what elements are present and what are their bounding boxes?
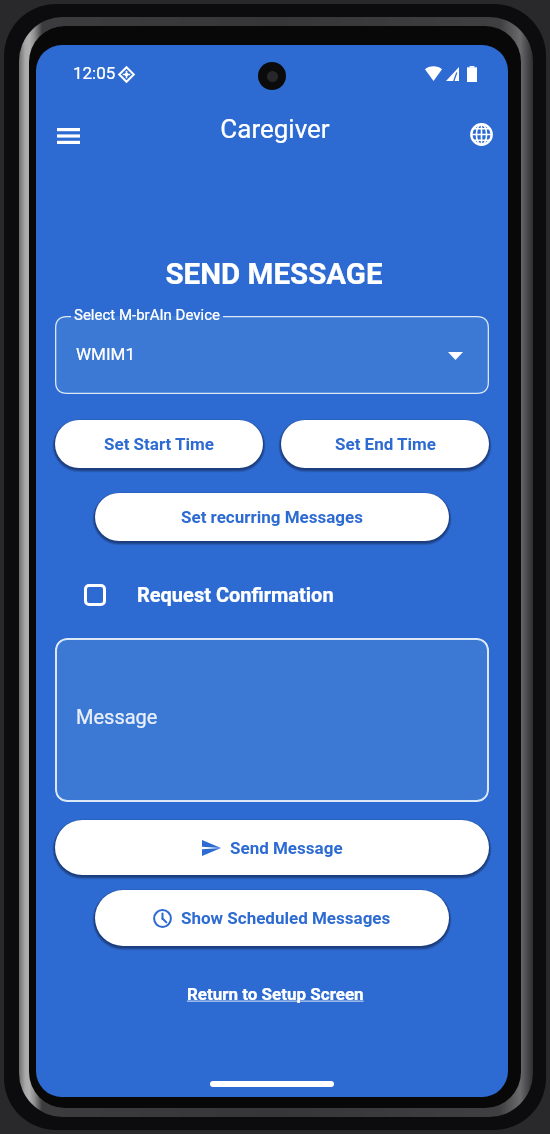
staticText: Set Start Time <box>104 434 214 454</box>
staticText: 12:05 <box>73 63 116 83</box>
staticText: Set recurring Messages <box>181 507 363 527</box>
button[interactable]: Return to Setup Screen <box>187 984 364 1004</box>
staticText: Caregiver <box>39 114 508 144</box>
staticText: Message <box>76 705 158 728</box>
button[interactable] <box>55 638 489 802</box>
staticText: SEND MESSAGE <box>38 257 508 292</box>
button[interactable] <box>55 316 489 394</box>
staticText: Send Message <box>230 838 343 858</box>
button[interactable]: Show Scheduled Messages <box>95 890 449 946</box>
button[interactable]: Set recurring Messages <box>95 493 449 541</box>
staticText: WMIM1 <box>76 344 135 364</box>
staticText: Request Confirmation <box>137 583 334 606</box>
button[interactable]: Language <box>461 114 502 155</box>
staticText: Set End Time <box>335 434 436 454</box>
button[interactable]: Set Start Time <box>55 420 263 468</box>
staticText: Select M-brAIn Device <box>74 306 220 324</box>
button[interactable]: Request Confirmation checkbox <box>84 584 106 606</box>
button[interactable]: Menu <box>47 115 89 157</box>
staticText: Show Scheduled Messages <box>181 908 391 928</box>
button[interactable]: Set End Time <box>281 420 489 468</box>
button[interactable]: Send Message <box>55 820 489 875</box>
